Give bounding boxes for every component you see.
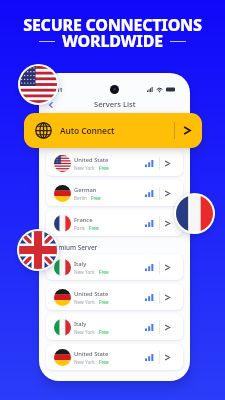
staticText: 9:41 bbox=[51, 86, 63, 94]
button[interactable]: Auto Connect bbox=[24, 113, 202, 148]
staticText: Free bbox=[99, 329, 109, 335]
button[interactable]: United State bbox=[46, 344, 183, 370]
staticText: Berlin bbox=[74, 195, 87, 201]
staticText: Italy bbox=[74, 260, 87, 268]
staticText: SECURE CONNECTIONS bbox=[23, 14, 202, 36]
staticText: New York bbox=[74, 269, 95, 275]
staticText: New York bbox=[74, 329, 95, 335]
staticText: United State bbox=[74, 350, 109, 358]
staticText: New York bbox=[74, 359, 95, 365]
staticText: New York bbox=[74, 299, 95, 305]
staticText: Servers List bbox=[94, 99, 136, 109]
staticText: France bbox=[74, 216, 93, 224]
button[interactable]: Back bbox=[44, 98, 57, 111]
button[interactable]: Italy bbox=[46, 314, 183, 340]
staticText: Paris bbox=[74, 225, 85, 231]
button[interactable]: Italy bbox=[46, 254, 183, 280]
staticText: Free bbox=[89, 225, 99, 231]
staticText: United State bbox=[74, 290, 109, 298]
staticText: WORLDWIDE bbox=[62, 30, 163, 52]
staticText: Free bbox=[99, 269, 109, 275]
staticText: Free bbox=[99, 359, 109, 365]
staticText: New York bbox=[74, 165, 95, 171]
staticText: German bbox=[74, 186, 97, 194]
staticText: Italy bbox=[74, 320, 87, 328]
staticText: Premium Server bbox=[48, 243, 98, 252]
staticText: Auto Connect bbox=[60, 125, 115, 136]
staticText: Free bbox=[99, 299, 109, 305]
button[interactable]: United State bbox=[46, 284, 183, 310]
staticText: Free bbox=[91, 195, 101, 201]
button[interactable]: France bbox=[46, 210, 183, 236]
staticText: United State bbox=[74, 156, 109, 164]
staticText: Free bbox=[99, 165, 109, 171]
button[interactable]: German bbox=[46, 180, 183, 206]
button[interactable]: United State bbox=[46, 150, 183, 176]
